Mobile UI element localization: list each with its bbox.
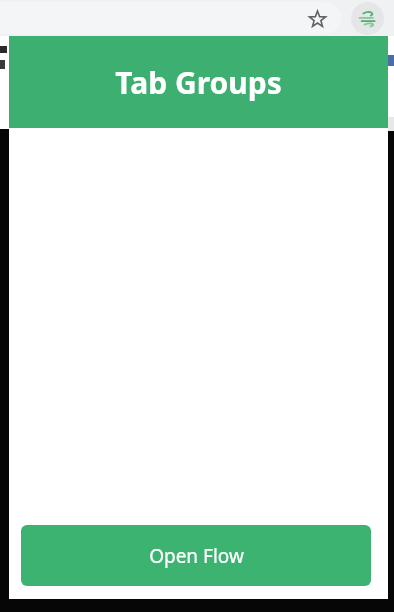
button[interactable]: Tab Groups extension	[351, 2, 384, 35]
staticText: Tab Groups	[115, 62, 282, 103]
button[interactable]	[0, 2, 341, 34]
button[interactable]: Bookmark this tab	[303, 5, 331, 33]
staticText: Open Flow	[149, 543, 244, 569]
button[interactable]: Open Flow	[21, 525, 371, 586]
